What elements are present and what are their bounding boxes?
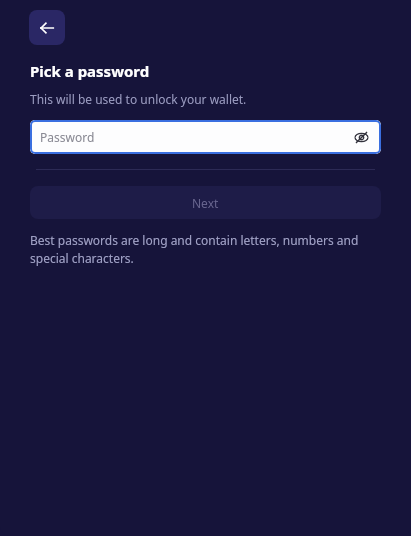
button[interactable]: Show password [351, 127, 371, 147]
staticText: Best passwords are long and contain lett… [30, 232, 373, 267]
button[interactable]: Back [29, 10, 65, 45]
staticText: This will be used to unlock your wallet. [30, 91, 247, 107]
staticText: Password [40, 129, 351, 145]
staticText: Pick a password [30, 61, 150, 81]
button[interactable]: Next [30, 186, 381, 219]
staticText: Next [192, 195, 219, 211]
button[interactable]: Password [30, 120, 381, 154]
